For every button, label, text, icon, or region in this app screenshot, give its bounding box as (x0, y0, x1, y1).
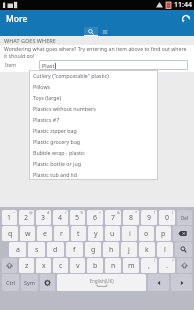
button[interactable]: 4 (53, 210, 68, 225)
button[interactable]: 3 (36, 210, 51, 225)
button[interactable]: Shift (2, 258, 17, 273)
staticText: # (47, 210, 50, 215)
button[interactable]: e (37, 226, 52, 241)
button[interactable]: , (141, 258, 157, 273)
staticText: k (145, 245, 149, 255)
button[interactable]: Plastic grocery bag (29, 136, 158, 147)
button[interactable]: x (36, 258, 51, 273)
button[interactable]: List tab (98, 27, 111, 36)
button[interactable]: c (53, 258, 68, 273)
button[interactable]: p (156, 226, 171, 241)
button[interactable]: 0 (159, 210, 175, 225)
button[interactable]: Cutlery ("compostable" plastic) (29, 70, 158, 81)
staticText: ) (172, 210, 174, 215)
staticText: Ctrl (6, 279, 16, 286)
button[interactable]: Plastics #7 (29, 114, 158, 125)
staticText: ~ (13, 210, 16, 215)
staticText: u (110, 229, 115, 239)
button[interactable]: 5 (70, 210, 85, 225)
button[interactable]: q (2, 226, 18, 241)
button[interactable]: o (139, 226, 154, 241)
button[interactable]: j (121, 242, 137, 257)
staticText: t (77, 229, 80, 239)
button[interactable]: Ctrl (2, 274, 19, 291)
staticText: Wondering what goes where? Try entering … (4, 45, 190, 58)
staticText: 7 (111, 213, 116, 223)
staticText: c (59, 261, 63, 271)
staticText: 3 (41, 213, 46, 223)
staticText: Del (181, 215, 188, 221)
staticText: y (94, 229, 98, 239)
staticText: 5 (75, 213, 80, 223)
staticText: d (53, 245, 58, 255)
button[interactable]: Move left (148, 274, 169, 291)
staticText: v (76, 261, 80, 271)
staticText: English(UK) (89, 278, 114, 284)
button[interactable]: t (71, 226, 86, 241)
staticText: * (135, 210, 138, 215)
button[interactable]: y (88, 226, 103, 241)
button[interactable]: Search (175, 242, 192, 257)
button[interactable]: n (105, 258, 121, 273)
button[interactable]: Del (177, 210, 192, 225)
button[interactable]: 9 (141, 210, 157, 225)
staticText: p (161, 229, 166, 239)
button[interactable]: w (20, 226, 35, 241)
staticText: Plastic bottle or jug (33, 160, 81, 167)
staticText: Cutlery ("compostable" plastic) (33, 72, 109, 79)
button[interactable]: z (19, 258, 34, 273)
button[interactable]: 8 (123, 210, 139, 225)
button[interactable]: m (123, 258, 139, 273)
staticText: % (80, 210, 84, 215)
button[interactable]: Move right (171, 274, 192, 291)
button[interactable]: f (66, 242, 83, 257)
button[interactable]: 2 (19, 210, 34, 225)
button[interactable]: Plastics without numbers (29, 103, 158, 114)
button[interactable]: 6 (87, 210, 103, 225)
button[interactable]: Shift (177, 258, 192, 273)
staticText: / (65, 210, 67, 215)
button[interactable]: k (139, 242, 155, 257)
button[interactable]: 1 (2, 210, 17, 225)
button[interactable]: Plastic bottle or jug (29, 158, 158, 169)
staticText: Plastic tub and lid (33, 171, 77, 178)
staticText: x (42, 261, 46, 271)
staticText: 2 (24, 213, 29, 223)
staticText: i (129, 229, 131, 239)
button[interactable]: Plastic zipper bag (29, 125, 158, 136)
button[interactable]: i (122, 226, 137, 241)
button[interactable]: Bubble wrap - plastic (29, 147, 158, 158)
staticText: j (128, 245, 130, 255)
button[interactable]: Refresh (177, 10, 194, 27)
button[interactable]: Sym (21, 274, 38, 291)
button[interactable]: s (28, 242, 45, 257)
button[interactable]: 7 (105, 210, 121, 225)
button[interactable]: Toys (large) (29, 92, 158, 103)
staticText: z (25, 261, 29, 271)
staticText: . (166, 261, 168, 271)
button[interactable]: Plast (39, 60, 188, 70)
staticText: Plastic zipper bag (33, 127, 77, 134)
button[interactable]: Space (57, 274, 146, 291)
button[interactable]: v (70, 258, 85, 273)
staticText: & (117, 210, 120, 215)
button[interactable]: l (157, 242, 173, 257)
button[interactable]: b (87, 258, 103, 273)
button[interactable]: Pillows (29, 81, 158, 92)
staticText: w (25, 229, 31, 239)
button[interactable]: r (54, 226, 69, 241)
staticText: 6 (93, 213, 98, 223)
button[interactable]: a (9, 242, 26, 257)
button[interactable]: d (47, 242, 64, 257)
button[interactable]: g (85, 242, 101, 257)
button[interactable]: u (105, 226, 120, 241)
button[interactable]: h (103, 242, 119, 257)
staticText: g (91, 245, 96, 255)
button[interactable]: Input settings (40, 274, 55, 291)
staticText: Plastics without numbers (33, 105, 96, 112)
button[interactable]: Plastic tub and lid (29, 169, 158, 180)
button[interactable]: Backspace (173, 226, 192, 241)
staticText: Sym (24, 279, 35, 286)
button[interactable]: Search tab (84, 27, 98, 36)
button[interactable]: . (159, 258, 175, 273)
